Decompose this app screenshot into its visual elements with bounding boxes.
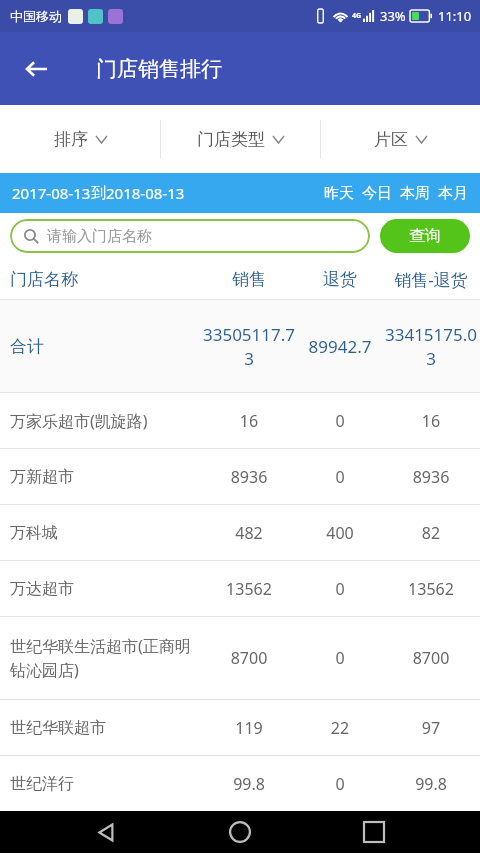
- staticText: 世纪华联生活超市(正商明钻沁园店): [10, 635, 196, 681]
- staticText: 到: [91, 184, 106, 203]
- staticText: 119: [200, 717, 298, 739]
- staticText: 16: [200, 410, 298, 432]
- staticText: 万新超市: [10, 467, 196, 487]
- staticText: 世纪华联超市: [10, 718, 196, 738]
- button[interactable]: 万达超市: [0, 561, 480, 616]
- staticText: 400: [298, 522, 382, 544]
- staticText: 8936: [382, 466, 480, 488]
- button[interactable]: 2017-08-13: [12, 183, 185, 203]
- staticText: 片区: [374, 129, 408, 150]
- staticText: 0: [298, 647, 382, 669]
- staticText: 16: [382, 410, 480, 432]
- staticText: 8936: [200, 466, 298, 488]
- staticText: 99.8: [200, 773, 298, 795]
- button[interactable]: 本月: [438, 184, 468, 203]
- button[interactable]: Back: [78, 811, 134, 853]
- staticText: 合计: [10, 336, 200, 357]
- staticText: 万科城: [10, 523, 196, 543]
- button[interactable]: 世纪洋行: [0, 756, 480, 811]
- button[interactable]: 片区: [321, 105, 480, 173]
- button[interactable]: 世纪华联超市: [0, 700, 480, 755]
- button[interactable]: 今日: [362, 184, 392, 203]
- staticText: 89942.7: [300, 335, 380, 358]
- button[interactable]: 昨天: [324, 184, 354, 203]
- staticText: 请输入门店名称: [47, 227, 152, 246]
- button[interactable]: 本周: [400, 184, 430, 203]
- staticText: 门店名称: [10, 269, 200, 290]
- button[interactable]: 门店类型: [161, 105, 320, 173]
- staticText: 中国移动: [10, 8, 62, 24]
- button[interactable]: Recents: [346, 811, 402, 853]
- staticText: 11:10: [438, 7, 472, 25]
- staticText: 8700: [382, 647, 480, 669]
- button[interactable]: 万科城: [0, 505, 480, 560]
- staticText: 2017-08-13: [12, 183, 91, 203]
- button[interactable]: 查询: [380, 219, 470, 253]
- button[interactable]: 世纪华联生活超市(正商明钻沁园店): [0, 617, 480, 699]
- staticText: 销售-退货: [382, 268, 480, 291]
- staticText: 万达超市: [10, 579, 196, 599]
- staticText: 0: [298, 410, 382, 432]
- staticText: 排序: [54, 129, 88, 150]
- staticText: 销售: [200, 269, 298, 290]
- staticText: 0: [298, 466, 382, 488]
- staticText: 33415175.03: [384, 323, 478, 370]
- staticText: 99.8: [382, 773, 480, 795]
- staticText: 世纪洋行: [10, 774, 196, 794]
- staticText: 0: [298, 578, 382, 600]
- staticText: 查询: [409, 226, 441, 246]
- button[interactable]: 排序: [0, 105, 160, 173]
- staticText: 97: [382, 717, 480, 739]
- staticText: 门店销售排行: [96, 56, 222, 82]
- staticText: 33%: [380, 7, 406, 25]
- staticText: 22: [298, 717, 382, 739]
- staticText: 万家乐超市(凯旋路): [10, 410, 196, 432]
- button[interactable]: 请输入门店名称: [10, 219, 370, 253]
- button[interactable]: 万新超市: [0, 449, 480, 504]
- staticText: 82: [382, 522, 480, 544]
- staticText: 33505117.73: [202, 323, 296, 370]
- staticText: 13562: [200, 578, 298, 600]
- button[interactable]: Back: [14, 46, 60, 92]
- staticText: 门店类型: [197, 129, 265, 150]
- staticText: 13562: [382, 578, 480, 600]
- button[interactable]: Home: [212, 811, 268, 853]
- staticText: 0: [298, 773, 382, 795]
- staticText: 8700: [200, 647, 298, 669]
- staticText: 退货: [298, 269, 382, 290]
- staticText: 4G: [352, 11, 362, 21]
- button[interactable]: 万家乐超市(凯旋路): [0, 393, 480, 448]
- staticText: 2018-08-13: [106, 183, 185, 203]
- staticText: 482: [200, 522, 298, 544]
